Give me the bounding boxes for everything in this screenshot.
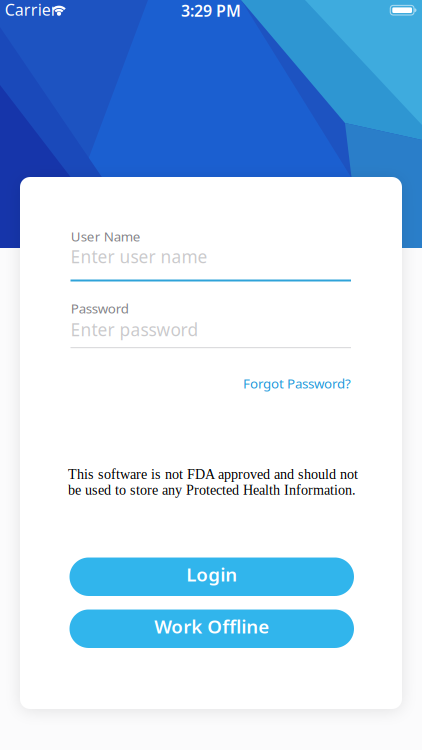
button[interactable]: Work Offline — [69, 609, 354, 648]
staticText: Carrier — [5, 0, 58, 20]
staticText: Password — [71, 299, 129, 317]
staticText: This software is not FDA approved and sh… — [68, 466, 358, 498]
staticText: Enter user name — [70, 245, 207, 268]
button[interactable]: Login — [69, 557, 354, 596]
staticText: Work Offline — [154, 614, 269, 639]
staticText: Forgot Password? — [243, 374, 351, 392]
button[interactable]: Enter password — [70, 318, 351, 348]
button[interactable]: Forgot Password? — [243, 374, 351, 392]
staticText: Enter password — [70, 318, 198, 341]
staticText: Login — [186, 562, 237, 587]
staticText: User Name — [71, 227, 141, 245]
button[interactable]: Enter user name — [70, 245, 351, 281]
staticText: 3:29 PM — [181, 0, 241, 21]
